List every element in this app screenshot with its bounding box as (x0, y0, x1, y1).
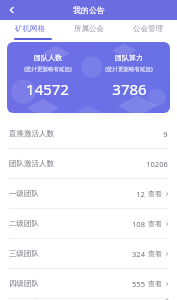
staticText: 我的公告 (73, 5, 105, 15)
staticText: 14572 (26, 79, 69, 99)
staticText: 二级团队 (9, 219, 39, 228)
button[interactable]: 一级团队 (0, 179, 177, 208)
staticText: 所属公会 (74, 24, 104, 33)
staticText: 9 (163, 129, 168, 139)
button[interactable]: 团队人数 (7, 42, 170, 113)
staticText: (统计更新略有延迟) (24, 65, 72, 73)
staticText: 324 (132, 249, 145, 259)
button[interactable]: 五级团队 (0, 299, 177, 300)
staticText: 团队人数 (34, 53, 62, 62)
button[interactable]: 公会管理 (127, 20, 169, 37)
staticText: 12 (136, 189, 145, 199)
staticText: 查看 (148, 279, 162, 288)
staticText: 查看 (148, 249, 162, 258)
staticText: 三级团队 (9, 249, 39, 258)
staticText: 108 (132, 219, 145, 229)
button[interactable]: 直推激活人数 (0, 119, 177, 148)
button[interactable]: Back (4, 2, 20, 18)
button[interactable]: 所属公会 (68, 20, 110, 37)
button[interactable]: 三级团队 (0, 239, 177, 268)
staticText: 四级团队 (9, 279, 39, 288)
staticText: 3786 (112, 79, 147, 99)
staticText: 直推激活人数 (9, 129, 54, 138)
staticText: (统计更新略有延迟) (105, 65, 153, 73)
staticText: 555 (132, 279, 145, 289)
button[interactable]: 四级团队 (0, 269, 177, 298)
staticText: 查看 (148, 219, 162, 228)
staticText: 10206 (146, 159, 168, 169)
button[interactable]: 矿机网格 (9, 20, 51, 37)
staticText: 公会管理 (133, 24, 163, 33)
staticText: 一级团队 (9, 189, 39, 198)
staticText: 团队激活人数 (9, 159, 54, 168)
staticText: 矿机网格 (15, 24, 45, 33)
staticText: 团队算力 (115, 53, 143, 62)
button[interactable]: 二级团队 (0, 209, 177, 238)
staticText: 查看 (148, 189, 162, 198)
button[interactable]: 团队激活人数 (0, 149, 177, 178)
